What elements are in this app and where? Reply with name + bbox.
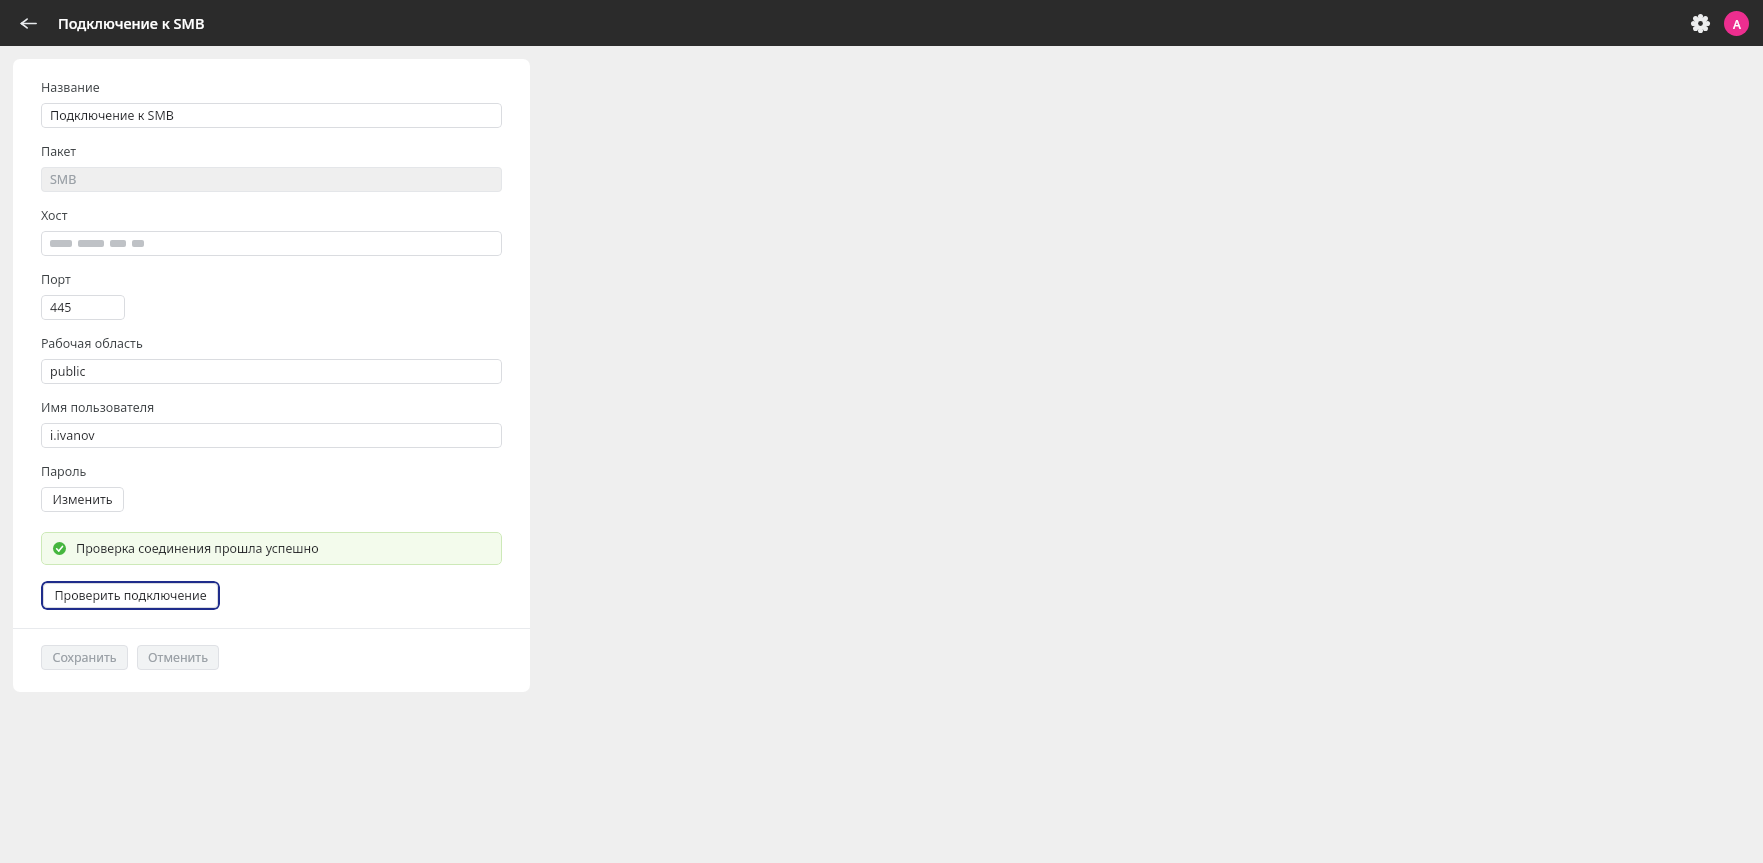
button[interactable]: Подключение к SMB (41, 103, 502, 128)
button: Отменить (137, 645, 219, 670)
staticText: Рабочая область (41, 335, 143, 352)
staticText: Пакет (41, 143, 77, 160)
staticText: SMB (50, 171, 77, 188)
staticText: Пароль (41, 463, 87, 480)
staticText: Отменить (148, 649, 208, 666)
button[interactable] (41, 231, 502, 256)
staticText: Название (41, 79, 100, 96)
button[interactable]: Account (1724, 11, 1749, 36)
button[interactable]: Settings (1684, 7, 1716, 39)
staticText: i.ivanov (50, 427, 95, 444)
staticText: Порт (41, 271, 71, 288)
button[interactable]: Проверить подключение (43, 583, 218, 608)
staticText: Проверить подключение (54, 587, 207, 604)
button[interactable]: SMB (41, 167, 502, 192)
staticText: Проверка соединения прошла успешно (76, 540, 319, 557)
staticText: Подключение к SMB (50, 107, 174, 124)
staticText: Хост (41, 207, 68, 224)
button: Сохранить (41, 645, 128, 670)
staticText: 445 (50, 299, 72, 316)
button[interactable]: public (41, 359, 502, 384)
staticText: Имя пользователя (41, 399, 155, 416)
button[interactable]: i.ivanov (41, 423, 502, 448)
staticText: public (50, 363, 86, 380)
staticText: Сохранить (52, 649, 117, 666)
staticText: Изменить (52, 491, 113, 508)
button[interactable]: Изменить (41, 487, 124, 512)
button[interactable]: 445 (41, 295, 125, 320)
staticText: Подключение к SMB (58, 13, 205, 33)
staticText: A (1733, 16, 1741, 32)
button[interactable]: Back (13, 8, 43, 38)
